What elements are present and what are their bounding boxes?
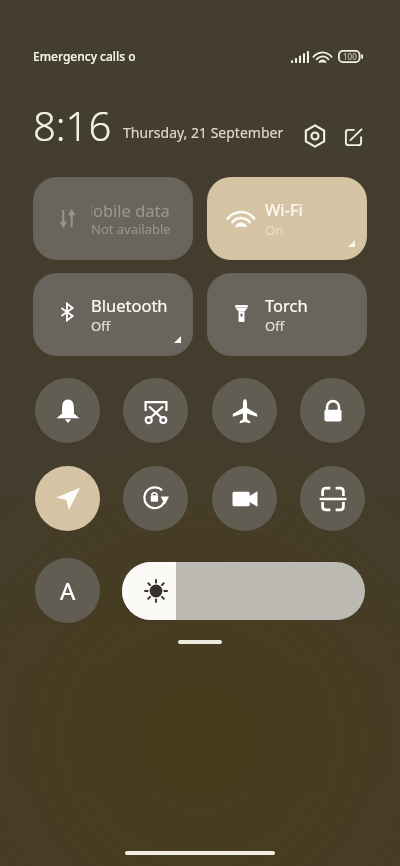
staticText: Thursday, 21 September: [123, 123, 284, 142]
button[interactable]: Screenshot: [123, 378, 188, 443]
button[interactable]: Edit: [336, 120, 370, 154]
staticText: 8:16: [33, 98, 112, 152]
staticText: Emergency calls o: [33, 48, 136, 64]
button[interactable]: Screen record: [212, 466, 277, 531]
button[interactable]: Notifications: [35, 378, 100, 443]
button[interactable]: Wi-Fi: [207, 177, 367, 260]
staticText: Wi-Fi: [265, 198, 303, 220]
button[interactable]: Lock: [300, 378, 365, 443]
staticText: On: [265, 221, 284, 239]
staticText: Not available: [91, 220, 171, 238]
button[interactable]: Brightness: [122, 562, 365, 620]
staticText: Off: [265, 317, 285, 335]
button[interactable]: Airplane mode: [212, 378, 277, 443]
staticText: A: [60, 574, 76, 607]
button[interactable]: Torch: [207, 273, 367, 356]
button[interactable]: Location: [35, 466, 100, 531]
button[interactable]: Auto rotate: [123, 466, 188, 531]
button[interactable]: Mobile data: [33, 177, 193, 260]
button[interactable]: Bluetooth: [33, 273, 193, 356]
staticText: Mobile data: [91, 199, 170, 219]
staticText: 100: [343, 51, 357, 62]
button[interactable]: Settings: [298, 119, 332, 153]
button[interactable]: Auto brightness: [35, 558, 100, 623]
staticText: Off: [91, 317, 111, 335]
button[interactable]: Scan: [300, 466, 365, 531]
staticText: Torch: [265, 294, 308, 316]
staticText: Bluetooth: [91, 294, 168, 316]
